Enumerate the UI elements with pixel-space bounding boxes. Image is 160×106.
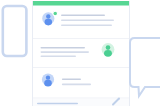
button[interactable]: Chat illustration — [0, 0, 160, 106]
